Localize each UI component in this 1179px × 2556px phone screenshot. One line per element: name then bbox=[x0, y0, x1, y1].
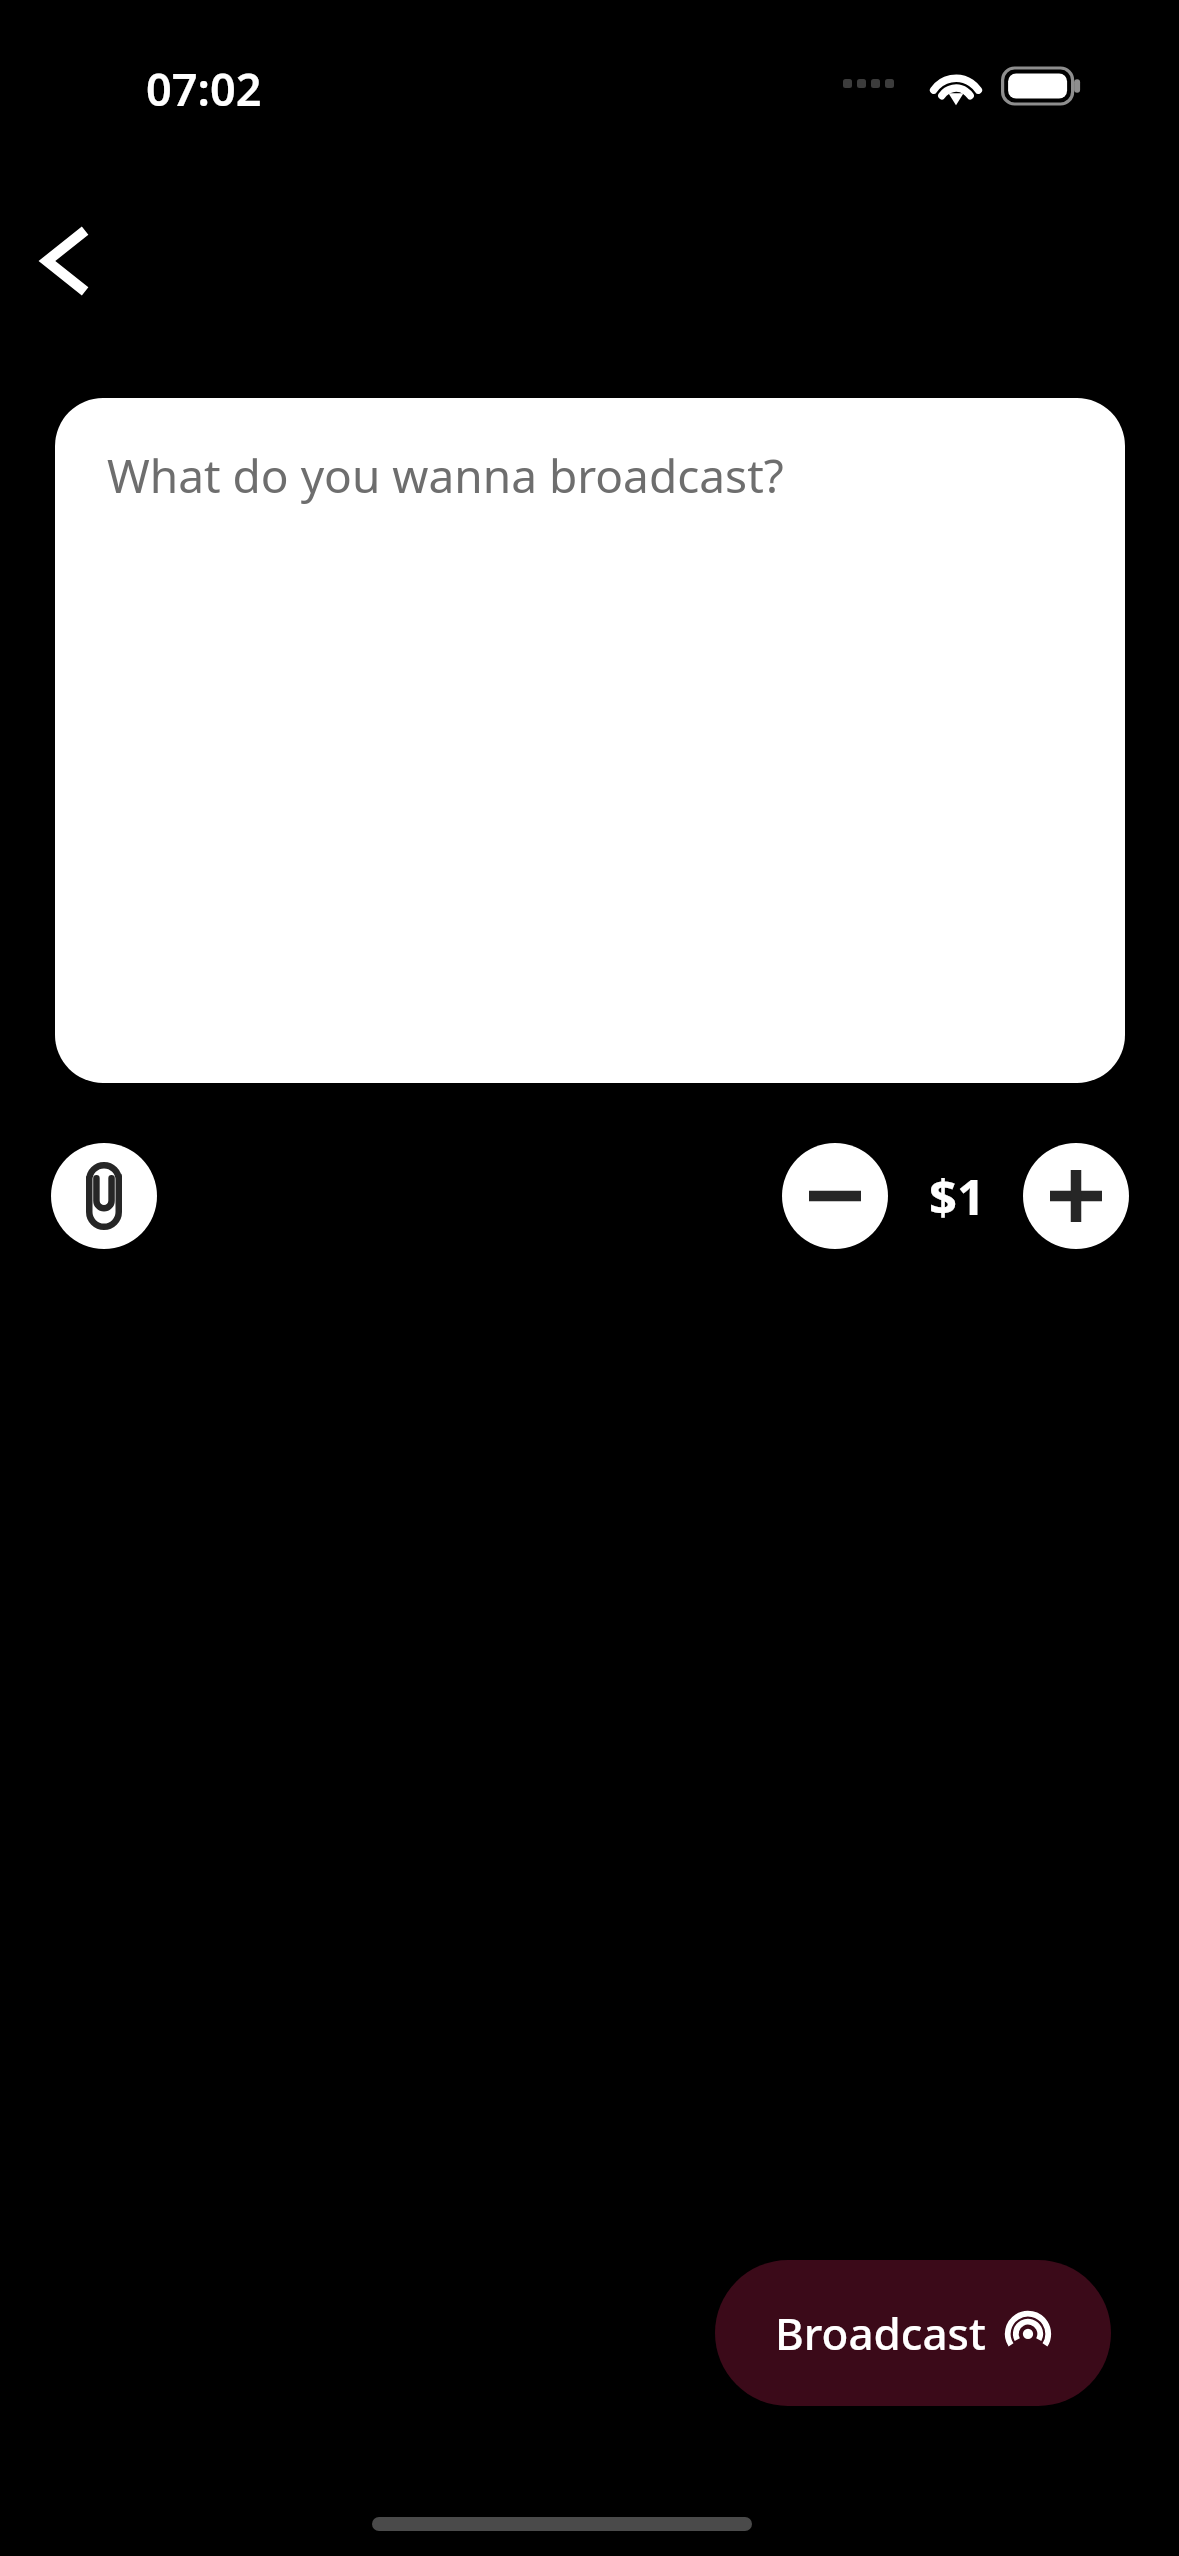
staticText: What do you wanna broadcast? bbox=[107, 444, 784, 507]
staticText: 07:02 bbox=[146, 58, 262, 119]
button[interactable]: Increase amount bbox=[1023, 1143, 1129, 1249]
button[interactable]: Back bbox=[12, 206, 120, 314]
button[interactable]: Decrease amount bbox=[782, 1143, 888, 1249]
button[interactable]: Broadcast bbox=[715, 2260, 1111, 2406]
button[interactable]: Attach file bbox=[51, 1143, 157, 1249]
staticText: $1 bbox=[929, 1163, 986, 1230]
staticText: Broadcast bbox=[775, 2303, 986, 2363]
button[interactable]: What do you wanna broadcast? bbox=[55, 398, 1125, 1083]
